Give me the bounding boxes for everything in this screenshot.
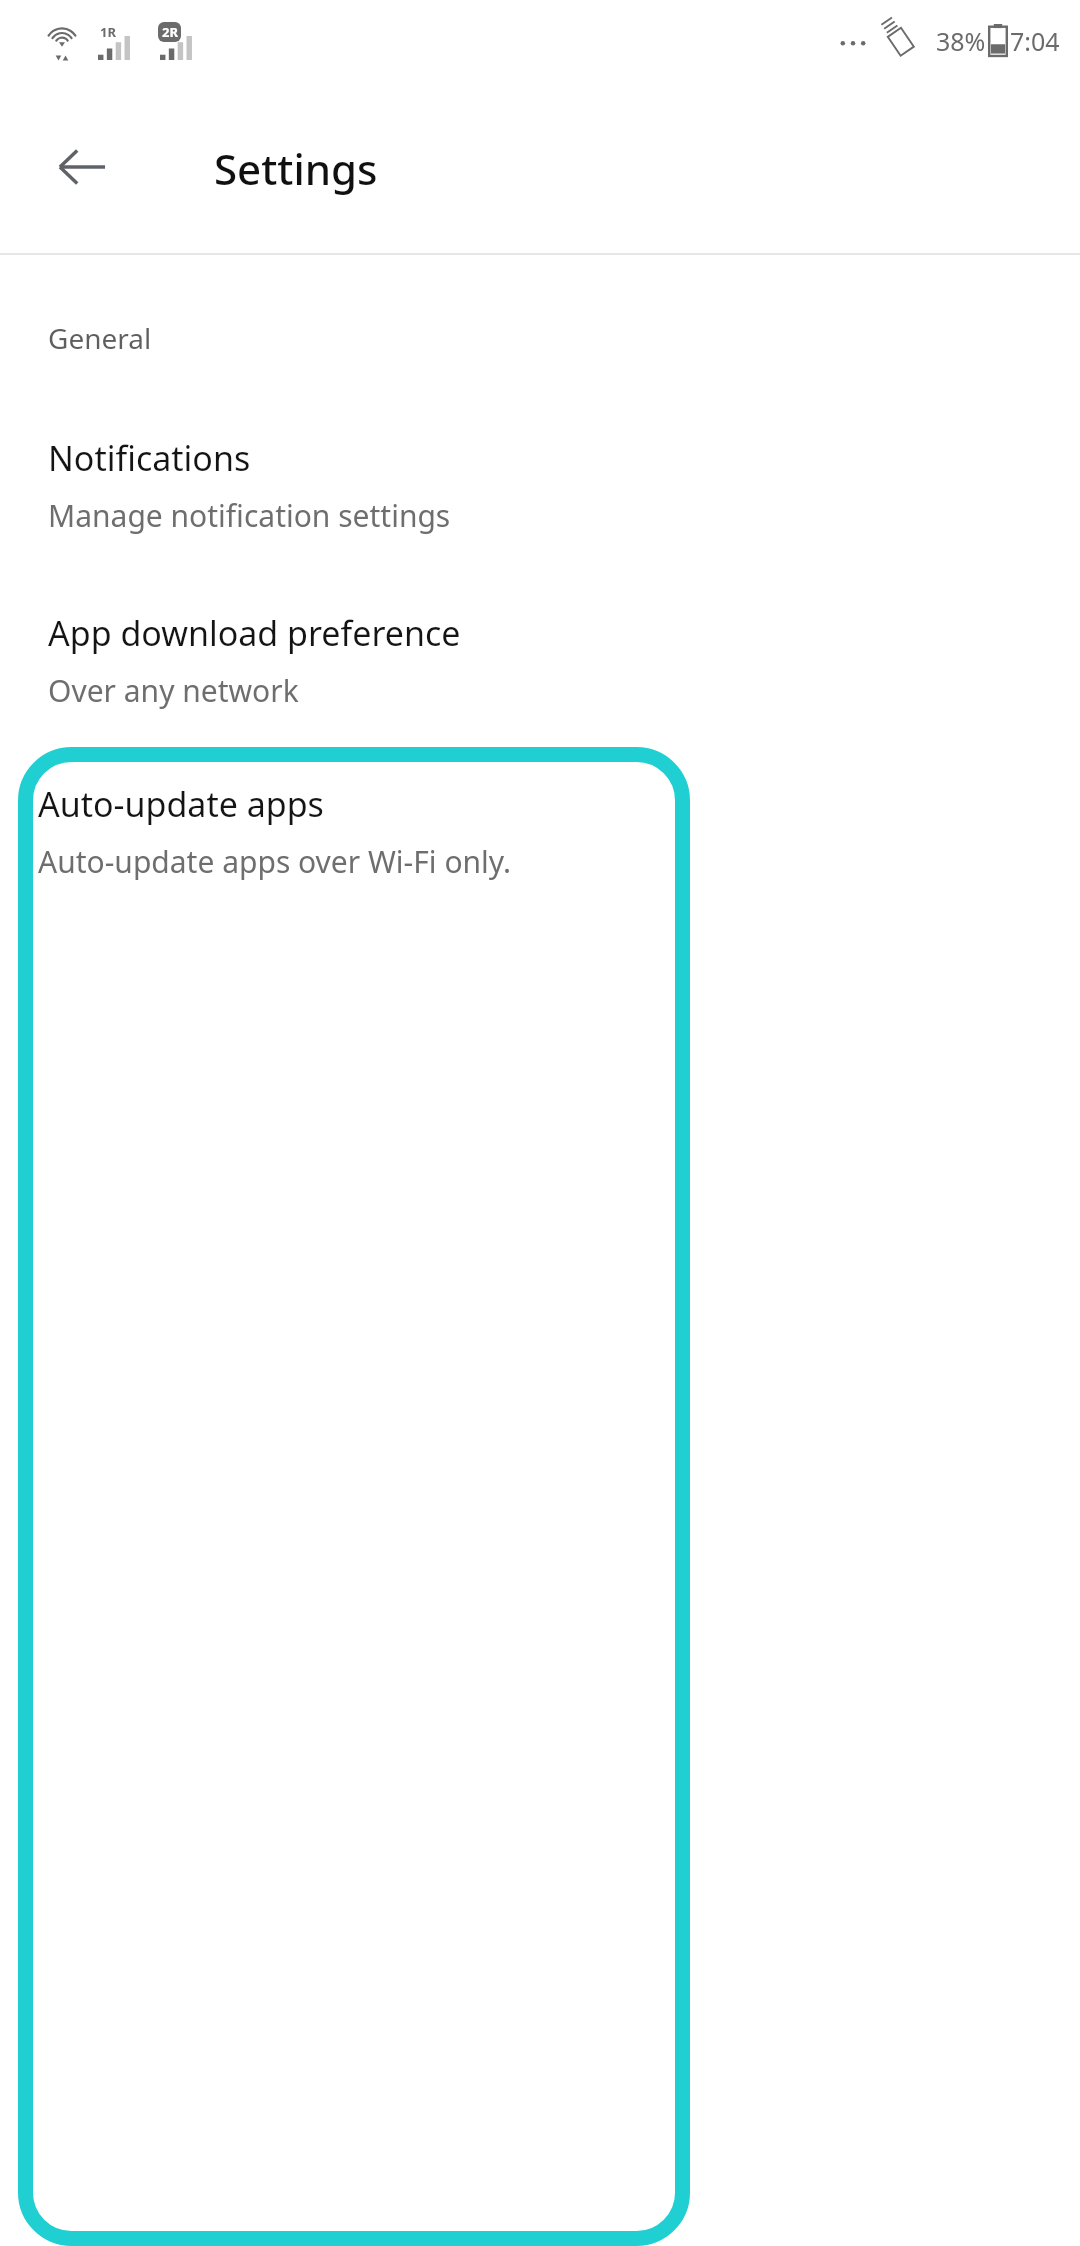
staticText: 7:04 — [1010, 24, 1060, 58]
staticText: Auto-update apps — [38, 781, 324, 827]
staticText: 38% — [936, 24, 986, 58]
staticText: 1R — [100, 23, 116, 41]
staticText: Settings — [214, 140, 378, 197]
staticText: Manage notification settings — [48, 495, 451, 536]
button[interactable]: Auto-update apps — [18, 747, 690, 2246]
button[interactable]: Back — [36, 121, 128, 213]
staticText: General — [48, 319, 152, 357]
button[interactable]: Notifications — [0, 435, 1080, 536]
staticText: Over any network — [48, 670, 299, 711]
staticText: App download preference — [48, 610, 461, 656]
staticText: Notifications — [48, 435, 251, 481]
button[interactable]: App download preference — [0, 610, 1080, 711]
staticText: 2R — [162, 23, 178, 41]
staticText: Auto-update apps over Wi-Fi only. — [38, 841, 511, 882]
